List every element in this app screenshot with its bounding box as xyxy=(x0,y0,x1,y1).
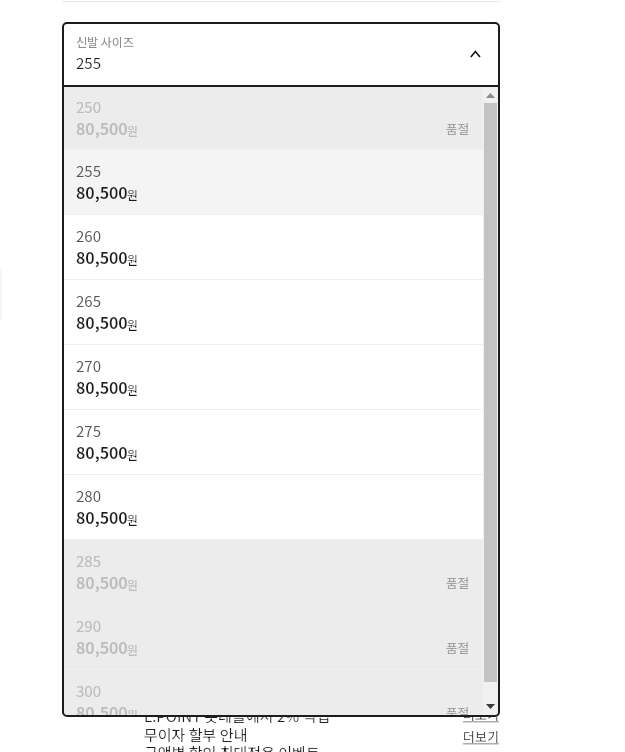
staticText: 품절 xyxy=(446,638,470,656)
staticText: 285 xyxy=(76,550,101,572)
staticText: 280 xyxy=(76,485,101,507)
staticText: 80,500 xyxy=(76,440,128,463)
staticText: 275 xyxy=(76,420,101,442)
button[interactable]: Collapse size list xyxy=(458,37,492,71)
staticText: 255 xyxy=(76,52,101,74)
staticText: 80,500 xyxy=(76,310,128,333)
staticText: 원 xyxy=(127,251,139,268)
staticText: 무이자 할부 안내 xyxy=(144,724,248,746)
staticText: 80,500 xyxy=(76,505,128,528)
staticText: 255 xyxy=(76,160,101,182)
staticText: 260 xyxy=(76,225,101,247)
button[interactable]: 255 xyxy=(62,150,500,214)
staticText: 80,500 xyxy=(76,635,128,658)
staticText: 80,500 xyxy=(76,570,128,593)
staticText: 270 xyxy=(76,355,101,377)
staticText: 원 xyxy=(127,511,139,528)
staticText: 원 xyxy=(127,641,139,658)
staticText: 원 xyxy=(127,446,139,463)
button[interactable]: 더보기 xyxy=(463,705,499,724)
staticText: 원 xyxy=(127,381,139,398)
button[interactable]: 265 xyxy=(62,280,500,344)
staticText: 품절 xyxy=(446,703,470,717)
staticText: 250 xyxy=(76,96,101,118)
button[interactable]: 280 xyxy=(62,475,500,539)
staticText: 290 xyxy=(76,615,101,637)
staticText: 265 xyxy=(76,290,101,312)
button[interactable]: 275 xyxy=(62,410,500,474)
staticText: 금액별 할인 최대적용 이벤트 xyxy=(144,742,320,752)
staticText: 300 xyxy=(76,680,101,702)
button[interactable]: 260 xyxy=(62,215,500,279)
button[interactable]: 285 xyxy=(62,540,500,604)
staticText: 신발 사이즈 xyxy=(76,33,134,50)
staticText: 품절 xyxy=(446,119,470,137)
staticText: 원 xyxy=(127,316,139,333)
staticText: 80,500 xyxy=(76,700,128,717)
button[interactable]: Scroll up xyxy=(486,93,495,98)
button[interactable]: 250 xyxy=(62,86,500,149)
staticText: 80,500 xyxy=(76,116,128,139)
button[interactable]: 270 xyxy=(62,345,500,409)
staticText: L.POINT 롯데몰에서 2% 적립 xyxy=(144,705,330,727)
staticText: 품절 xyxy=(446,573,470,591)
staticText: 원 xyxy=(127,186,139,203)
button[interactable]: 290 xyxy=(62,605,500,669)
button[interactable]: Scroll down xyxy=(486,704,495,709)
button[interactable]: 신발 사이즈 xyxy=(62,22,500,85)
button[interactable]: 300 xyxy=(62,670,500,717)
button[interactable]: 더보기 xyxy=(463,727,499,746)
staticText: 원 xyxy=(127,122,139,139)
staticText: 80,500 xyxy=(76,245,128,268)
staticText: 80,500 xyxy=(76,375,128,398)
staticText: 80,500 xyxy=(76,180,128,203)
staticText: 원 xyxy=(127,706,139,717)
staticText: 원 xyxy=(127,576,139,593)
